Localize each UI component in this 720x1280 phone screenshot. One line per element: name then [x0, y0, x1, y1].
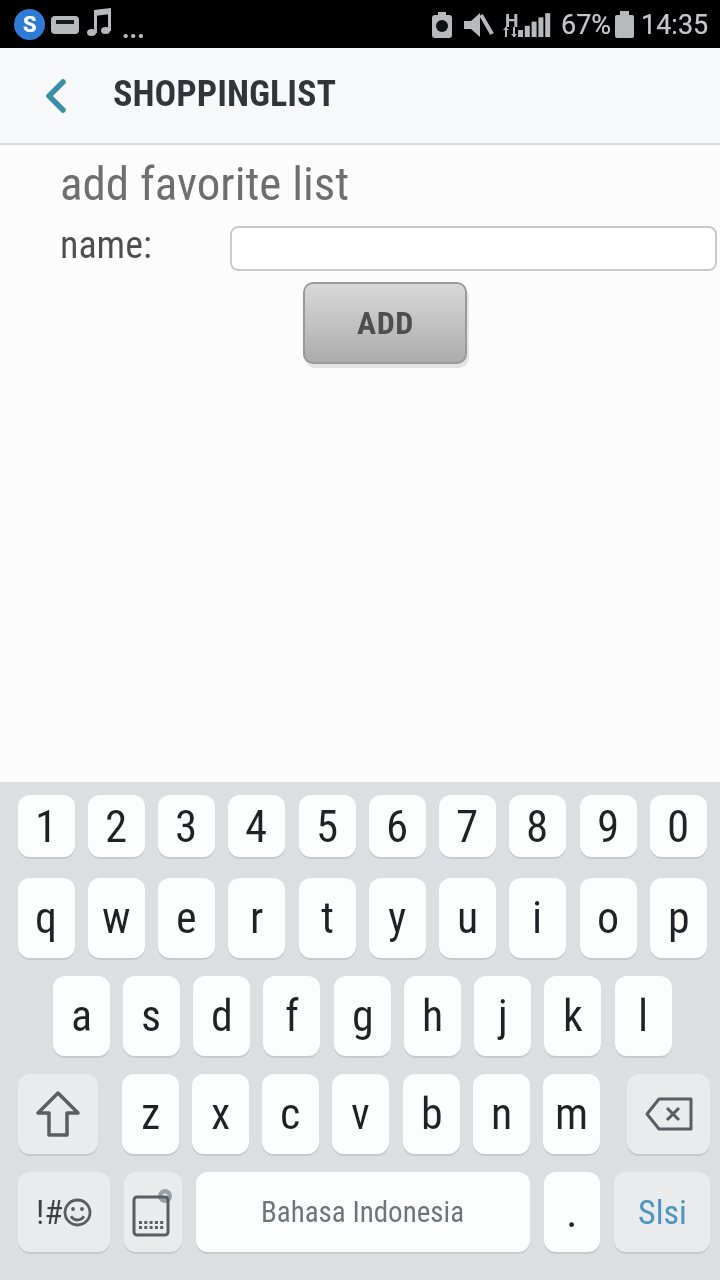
button[interactable]: z [122, 1074, 179, 1154]
staticText: h [422, 990, 444, 1042]
staticText: k [563, 990, 583, 1042]
staticText: Bahasa Indonesia [261, 1195, 465, 1229]
button[interactable]: q [18, 878, 75, 958]
button[interactable]: m [543, 1074, 600, 1154]
button[interactable]: u [439, 878, 496, 958]
staticText: 5 [316, 800, 339, 853]
button[interactable]: v [332, 1074, 389, 1154]
button[interactable] [124, 1172, 182, 1252]
button[interactable]: w [88, 878, 145, 958]
staticText: 14:35 [641, 9, 709, 41]
button[interactable]: r [228, 878, 285, 958]
staticText: 7 [456, 800, 479, 853]
button[interactable]: 9 [580, 795, 637, 857]
button[interactable]: 8 [509, 795, 566, 857]
button[interactable]: 1 [18, 795, 75, 857]
button[interactable] [230, 226, 717, 271]
button[interactable]: y [369, 878, 426, 958]
staticText: S [23, 12, 37, 38]
staticText: . [566, 1186, 578, 1238]
button[interactable]: Slsi [614, 1172, 710, 1252]
button[interactable]: e [158, 878, 215, 958]
staticText: t [321, 892, 335, 944]
staticText: j [498, 990, 508, 1042]
staticText: 1 [35, 800, 58, 853]
button[interactable]: l [615, 976, 672, 1056]
button[interactable]: 2 [88, 795, 145, 857]
button[interactable]: 3 [158, 795, 215, 857]
button[interactable]: f [263, 976, 320, 1056]
staticText: 6 [386, 800, 409, 853]
staticText: 2 [105, 800, 128, 853]
staticText: add favorite list [60, 156, 350, 211]
button[interactable]: d [193, 976, 250, 1056]
staticText: m [555, 1088, 589, 1140]
staticText: 67% [561, 9, 612, 41]
button[interactable] [26, 66, 86, 126]
button[interactable]: h [404, 976, 461, 1056]
staticText: ADD [357, 304, 414, 342]
staticText: a [71, 990, 93, 1042]
button[interactable]: . [544, 1172, 600, 1252]
staticText: b [421, 1088, 443, 1140]
staticText: w [102, 892, 131, 944]
staticText: g [352, 990, 374, 1042]
button[interactable]: j [474, 976, 531, 1056]
button[interactable]: c [262, 1074, 319, 1154]
staticText: e [176, 892, 197, 944]
staticText: q [35, 892, 58, 944]
staticText: f [285, 990, 299, 1042]
staticText: l [638, 990, 649, 1042]
button[interactable]: 0 [650, 795, 707, 857]
staticText: v [351, 1088, 370, 1140]
staticText: 8 [526, 800, 549, 853]
staticText: !# [36, 1192, 63, 1232]
button[interactable] [18, 1074, 98, 1154]
button[interactable]: o [580, 878, 637, 958]
button[interactable]: ADD [303, 282, 467, 364]
button[interactable]: s [123, 976, 180, 1056]
staticText: ... [122, 14, 145, 44]
staticText: x [211, 1088, 231, 1140]
staticText: name: [60, 223, 152, 268]
staticText: z [141, 1088, 161, 1140]
staticText: r [250, 892, 264, 944]
button[interactable]: n [473, 1074, 530, 1154]
button[interactable]: !# [18, 1172, 110, 1252]
button[interactable]: 6 [369, 795, 426, 857]
staticText: c [280, 1088, 301, 1140]
button[interactable]: p [650, 878, 707, 958]
staticText: s [141, 990, 162, 1042]
staticText: d [211, 990, 233, 1042]
staticText: H [505, 9, 519, 31]
staticText: n [491, 1088, 513, 1140]
staticText: u [457, 892, 479, 944]
button[interactable]: x [192, 1074, 249, 1154]
staticText: 0 [667, 800, 690, 853]
button[interactable]: a [53, 976, 110, 1056]
staticText: y [388, 892, 407, 944]
staticText: 4 [245, 800, 268, 853]
staticText: 3 [175, 800, 198, 853]
button[interactable]: Bahasa Indonesia [196, 1172, 530, 1252]
button[interactable]: i [509, 878, 566, 958]
staticText: o [597, 892, 620, 944]
staticText: 9 [597, 800, 620, 853]
staticText: SHOPPINGLIST [113, 73, 337, 115]
button[interactable]: k [544, 976, 601, 1056]
button[interactable]: g [334, 976, 391, 1056]
button[interactable]: t [299, 878, 356, 958]
button[interactable]: 5 [299, 795, 356, 857]
staticText: p [668, 892, 690, 944]
button[interactable]: b [403, 1074, 460, 1154]
staticText: i [532, 892, 543, 944]
button[interactable]: 7 [439, 795, 496, 857]
staticText: Slsi [638, 1192, 687, 1232]
button[interactable] [627, 1074, 710, 1154]
button[interactable]: 4 [228, 795, 285, 857]
